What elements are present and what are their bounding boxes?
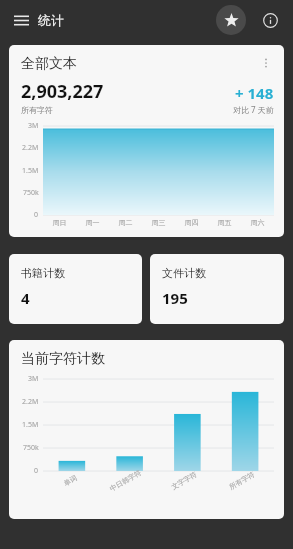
staticText: 当前字符计数 — [21, 350, 105, 368]
button[interactable]: 全部文本 — [9, 45, 284, 237]
staticText: 4 — [21, 288, 30, 308]
staticText: 全部文本 — [21, 55, 258, 73]
staticText: 所有字符 — [21, 105, 53, 115]
button[interactable]: 当前字符计数 — [9, 340, 284, 519]
staticText: 对比 7 天前 — [233, 104, 274, 115]
staticText: 书籍计数 — [21, 266, 65, 280]
button[interactable]: Information — [256, 6, 284, 34]
button[interactable]: Open navigation menu — [8, 7, 34, 33]
staticText: 195 — [162, 288, 188, 308]
button[interactable]: More options — [258, 55, 274, 71]
button[interactable]: 文件计数 — [150, 254, 284, 324]
staticText: + 148 — [235, 83, 274, 103]
button[interactable]: Favorite — [216, 5, 246, 35]
staticText: 统计 — [38, 12, 64, 28]
staticText: 文件计数 — [162, 266, 206, 280]
staticText: 2,903,227 — [21, 79, 104, 104]
button[interactable]: 书籍计数 — [9, 254, 142, 324]
